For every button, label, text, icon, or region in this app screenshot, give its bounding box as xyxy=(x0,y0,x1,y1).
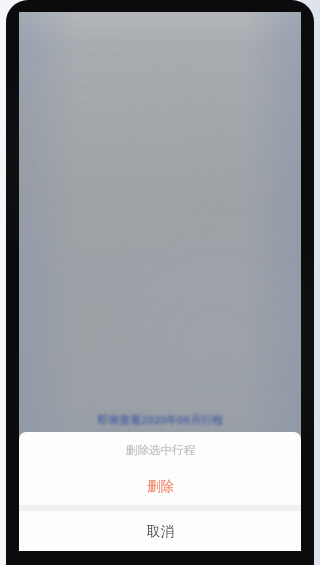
staticText: 即将查看2020年09月行程 xyxy=(97,412,223,427)
button[interactable]: 删除 xyxy=(19,467,301,505)
staticText: 取消 xyxy=(147,523,174,540)
staticText: 删除 xyxy=(147,478,174,495)
button[interactable]: 取消 xyxy=(19,511,301,551)
staticText: 删除选中行程 xyxy=(126,443,195,457)
